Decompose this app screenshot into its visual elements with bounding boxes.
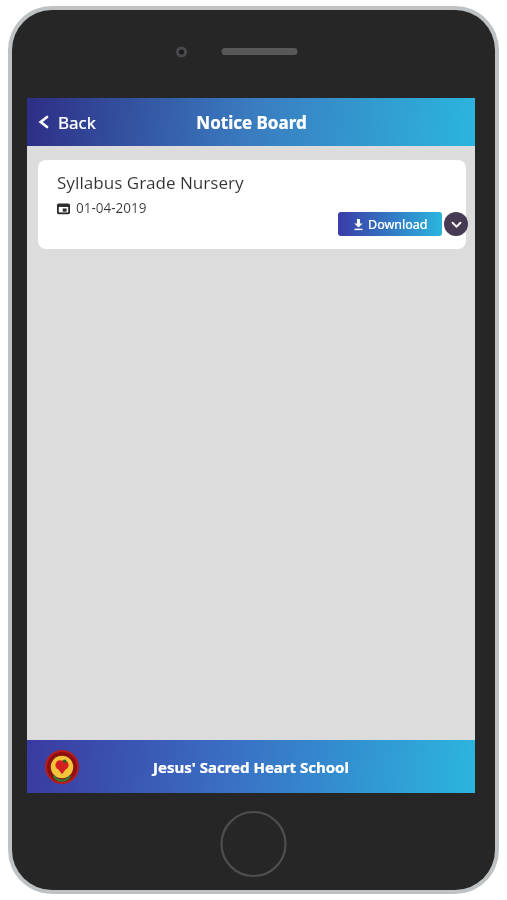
staticText: Jesus' Sacred Heart School bbox=[153, 757, 349, 777]
button[interactable]: Download bbox=[338, 212, 442, 236]
button[interactable]: Syllabus Grade Nursery bbox=[38, 160, 466, 249]
staticText: Download bbox=[368, 216, 428, 233]
staticText: Back bbox=[58, 111, 96, 134]
staticText: Notice Board bbox=[196, 111, 307, 134]
button[interactable]: Back bbox=[27, 98, 110, 146]
staticText: Syllabus Grade Nursery bbox=[57, 171, 244, 194]
button[interactable]: School logo bbox=[45, 750, 79, 784]
staticText: 01-04-2019 bbox=[76, 199, 147, 217]
button[interactable]: Expand bbox=[444, 212, 468, 236]
